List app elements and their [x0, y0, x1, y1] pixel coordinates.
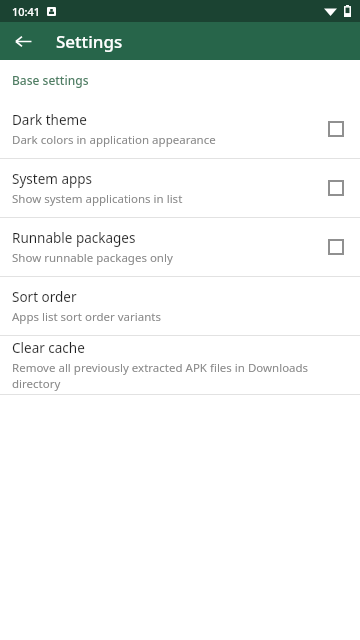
staticText: Settings: [56, 30, 123, 53]
staticText: Clear cache: [12, 339, 85, 357]
staticText: Dark theme: [12, 111, 87, 129]
button[interactable]: System apps: [0, 159, 360, 217]
staticText: Base settings: [12, 72, 89, 88]
button[interactable]: Clear cache: [0, 336, 360, 394]
button[interactable]: Sort order: [0, 277, 360, 335]
staticText: Remove all previously extracted APK file…: [12, 360, 344, 392]
staticText: System apps: [12, 170, 93, 188]
staticText: Sort order: [12, 288, 77, 306]
button[interactable]: Back: [8, 26, 38, 56]
button[interactable]: Runnable packages: [0, 218, 360, 276]
staticText: 10:41: [12, 4, 41, 19]
staticText: Runnable packages: [12, 229, 136, 247]
staticText: Dark colors in application appearance: [12, 132, 216, 148]
staticText: Apps list sort order variants: [12, 309, 161, 325]
button[interactable]: Dark theme: [0, 100, 360, 158]
staticText: Show runnable packages only: [12, 250, 173, 266]
staticText: Show system applications in list: [12, 191, 183, 207]
